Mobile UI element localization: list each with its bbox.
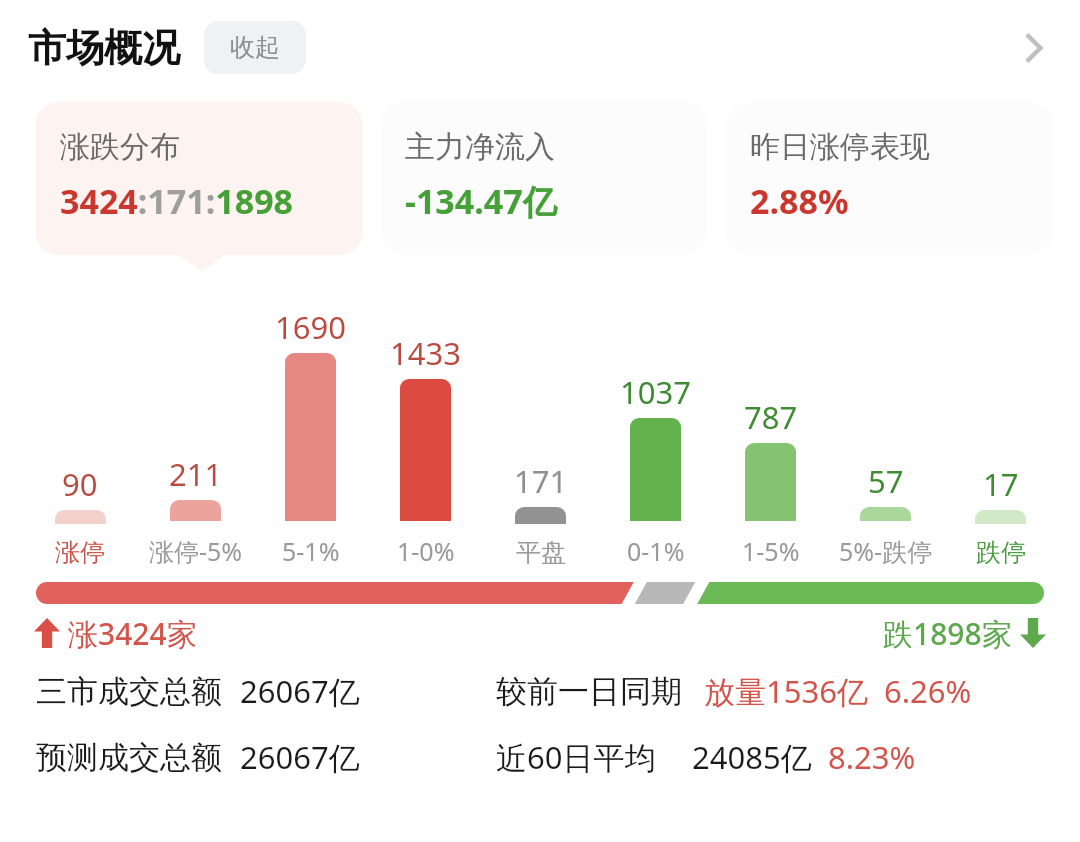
button[interactable]: 涨跌分布 [36,102,362,255]
staticText: 1037 [620,371,691,413]
staticText: 57 [868,460,904,502]
staticText: 近60日平均 [496,736,656,778]
staticText: 预测成交总额 [36,738,222,777]
other: Down [1020,618,1046,648]
staticText: 5%-跌停 [839,534,933,568]
button[interactable]: 主力净流入 [381,102,707,255]
staticText: 涨停-5% [149,534,243,568]
staticText: 1-0% [397,534,455,568]
staticText: 涨跌分布 [60,128,180,166]
staticText: 昨日涨停表现 [750,128,930,166]
button[interactable]: 收起 [204,21,306,74]
staticText: 0-1% [627,534,685,568]
staticText: 3424:171:1898 [60,178,294,224]
staticText: 涨停 [55,537,105,568]
staticText: 较前一日同期 [496,672,682,711]
staticText: 5-1% [282,534,340,568]
staticText: 平盘 [516,537,566,568]
staticText: 26067亿 [240,670,360,712]
staticText: 跌1898家 [883,613,1012,654]
staticText: 211 [169,453,223,495]
staticText: 171 [514,460,568,502]
staticText: 跌停 [976,537,1026,568]
staticText: 1433 [390,332,461,374]
staticText: 1690 [275,306,346,348]
staticText: 主力净流入 [405,128,555,166]
staticText: 24085亿 [692,736,812,778]
staticText: -134.47亿 [405,178,557,224]
staticText: 8.23% [828,736,916,778]
staticText: 6.26% [884,670,972,712]
button[interactable]: More [1006,22,1058,74]
staticText: 26067亿 [240,736,360,778]
staticText: 市场概况 [28,24,180,72]
staticText: 17 [983,463,1019,505]
staticText: 2.88% [750,178,849,224]
staticText: 三市成交总额 [36,672,222,711]
staticText: 收起 [230,32,280,63]
staticText: 90 [62,463,98,505]
button[interactable]: 昨日涨停表现 [726,102,1052,255]
staticText: 1-5% [742,534,800,568]
staticText: 787 [744,396,798,438]
staticText: 涨3424家 [68,613,197,654]
staticText: 放量1536亿 [704,670,868,712]
other: Up [34,618,60,648]
